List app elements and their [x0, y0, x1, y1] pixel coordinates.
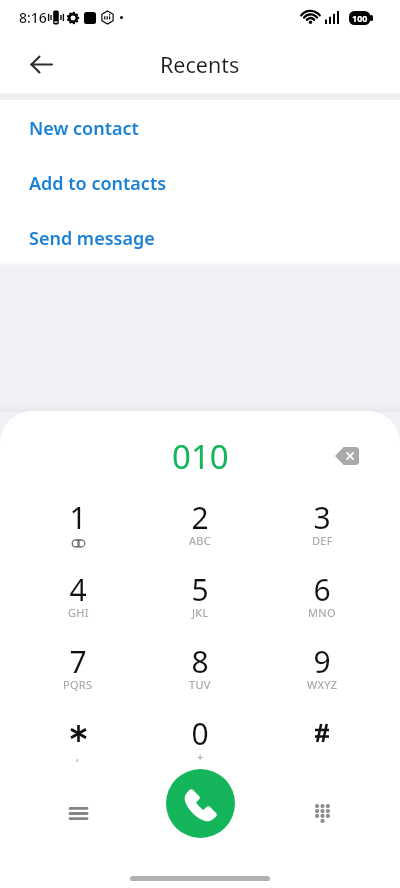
- staticText: 9: [313, 641, 331, 682]
- button[interactable]: 3: [261, 491, 383, 563]
- staticText: 100: [352, 12, 368, 24]
- staticText: 3: [313, 497, 331, 538]
- staticText: ,: [76, 749, 80, 764]
- button[interactable]: Back: [18, 41, 64, 87]
- staticText: New contact: [29, 116, 139, 141]
- staticText: 0: [191, 713, 209, 754]
- staticText: Send message: [29, 226, 155, 251]
- button[interactable]: Add to contacts: [0, 155, 400, 210]
- staticText: 8:16: [19, 8, 47, 27]
- staticText: Recents: [160, 50, 240, 79]
- button[interactable]: Backspace: [325, 434, 369, 478]
- staticText: Add to contacts: [29, 171, 167, 196]
- button[interactable]: 6: [261, 563, 383, 635]
- staticText: TUV: [189, 677, 211, 692]
- button[interactable]: ,: [17, 707, 139, 779]
- staticText: 8: [191, 641, 209, 682]
- button[interactable]: Keypad: [261, 763, 383, 843]
- staticText: 6: [313, 569, 331, 610]
- button[interactable]: 4: [17, 563, 139, 635]
- button[interactable]: Call log: [17, 763, 139, 843]
- button[interactable]: 5: [139, 563, 261, 635]
- staticText: JKL: [192, 605, 209, 620]
- staticText: 010: [172, 434, 229, 479]
- staticText: DEF: [312, 533, 333, 548]
- staticText: 4: [69, 569, 87, 610]
- button[interactable]: 7: [17, 635, 139, 707]
- staticText: 5: [191, 569, 209, 610]
- staticText: +: [197, 749, 204, 764]
- button[interactable]: 8: [139, 635, 261, 707]
- button[interactable]: Call: [166, 769, 235, 838]
- staticText: 1: [69, 497, 87, 538]
- button[interactable]: 1: [17, 491, 139, 563]
- staticText: ABC: [189, 533, 212, 548]
- staticText: WXYZ: [307, 677, 338, 692]
- button[interactable]: 0: [139, 707, 261, 779]
- button[interactable]: New contact: [0, 100, 400, 155]
- button[interactable]: [261, 707, 383, 779]
- button[interactable]: Send message: [0, 210, 400, 265]
- staticText: MNO: [308, 605, 336, 620]
- staticText: 7: [69, 641, 87, 682]
- staticText: GHI: [68, 605, 89, 620]
- button[interactable]: 9: [261, 635, 383, 707]
- staticText: PQRS: [63, 677, 93, 692]
- staticText: 2: [191, 497, 209, 538]
- button[interactable]: 2: [139, 491, 261, 563]
